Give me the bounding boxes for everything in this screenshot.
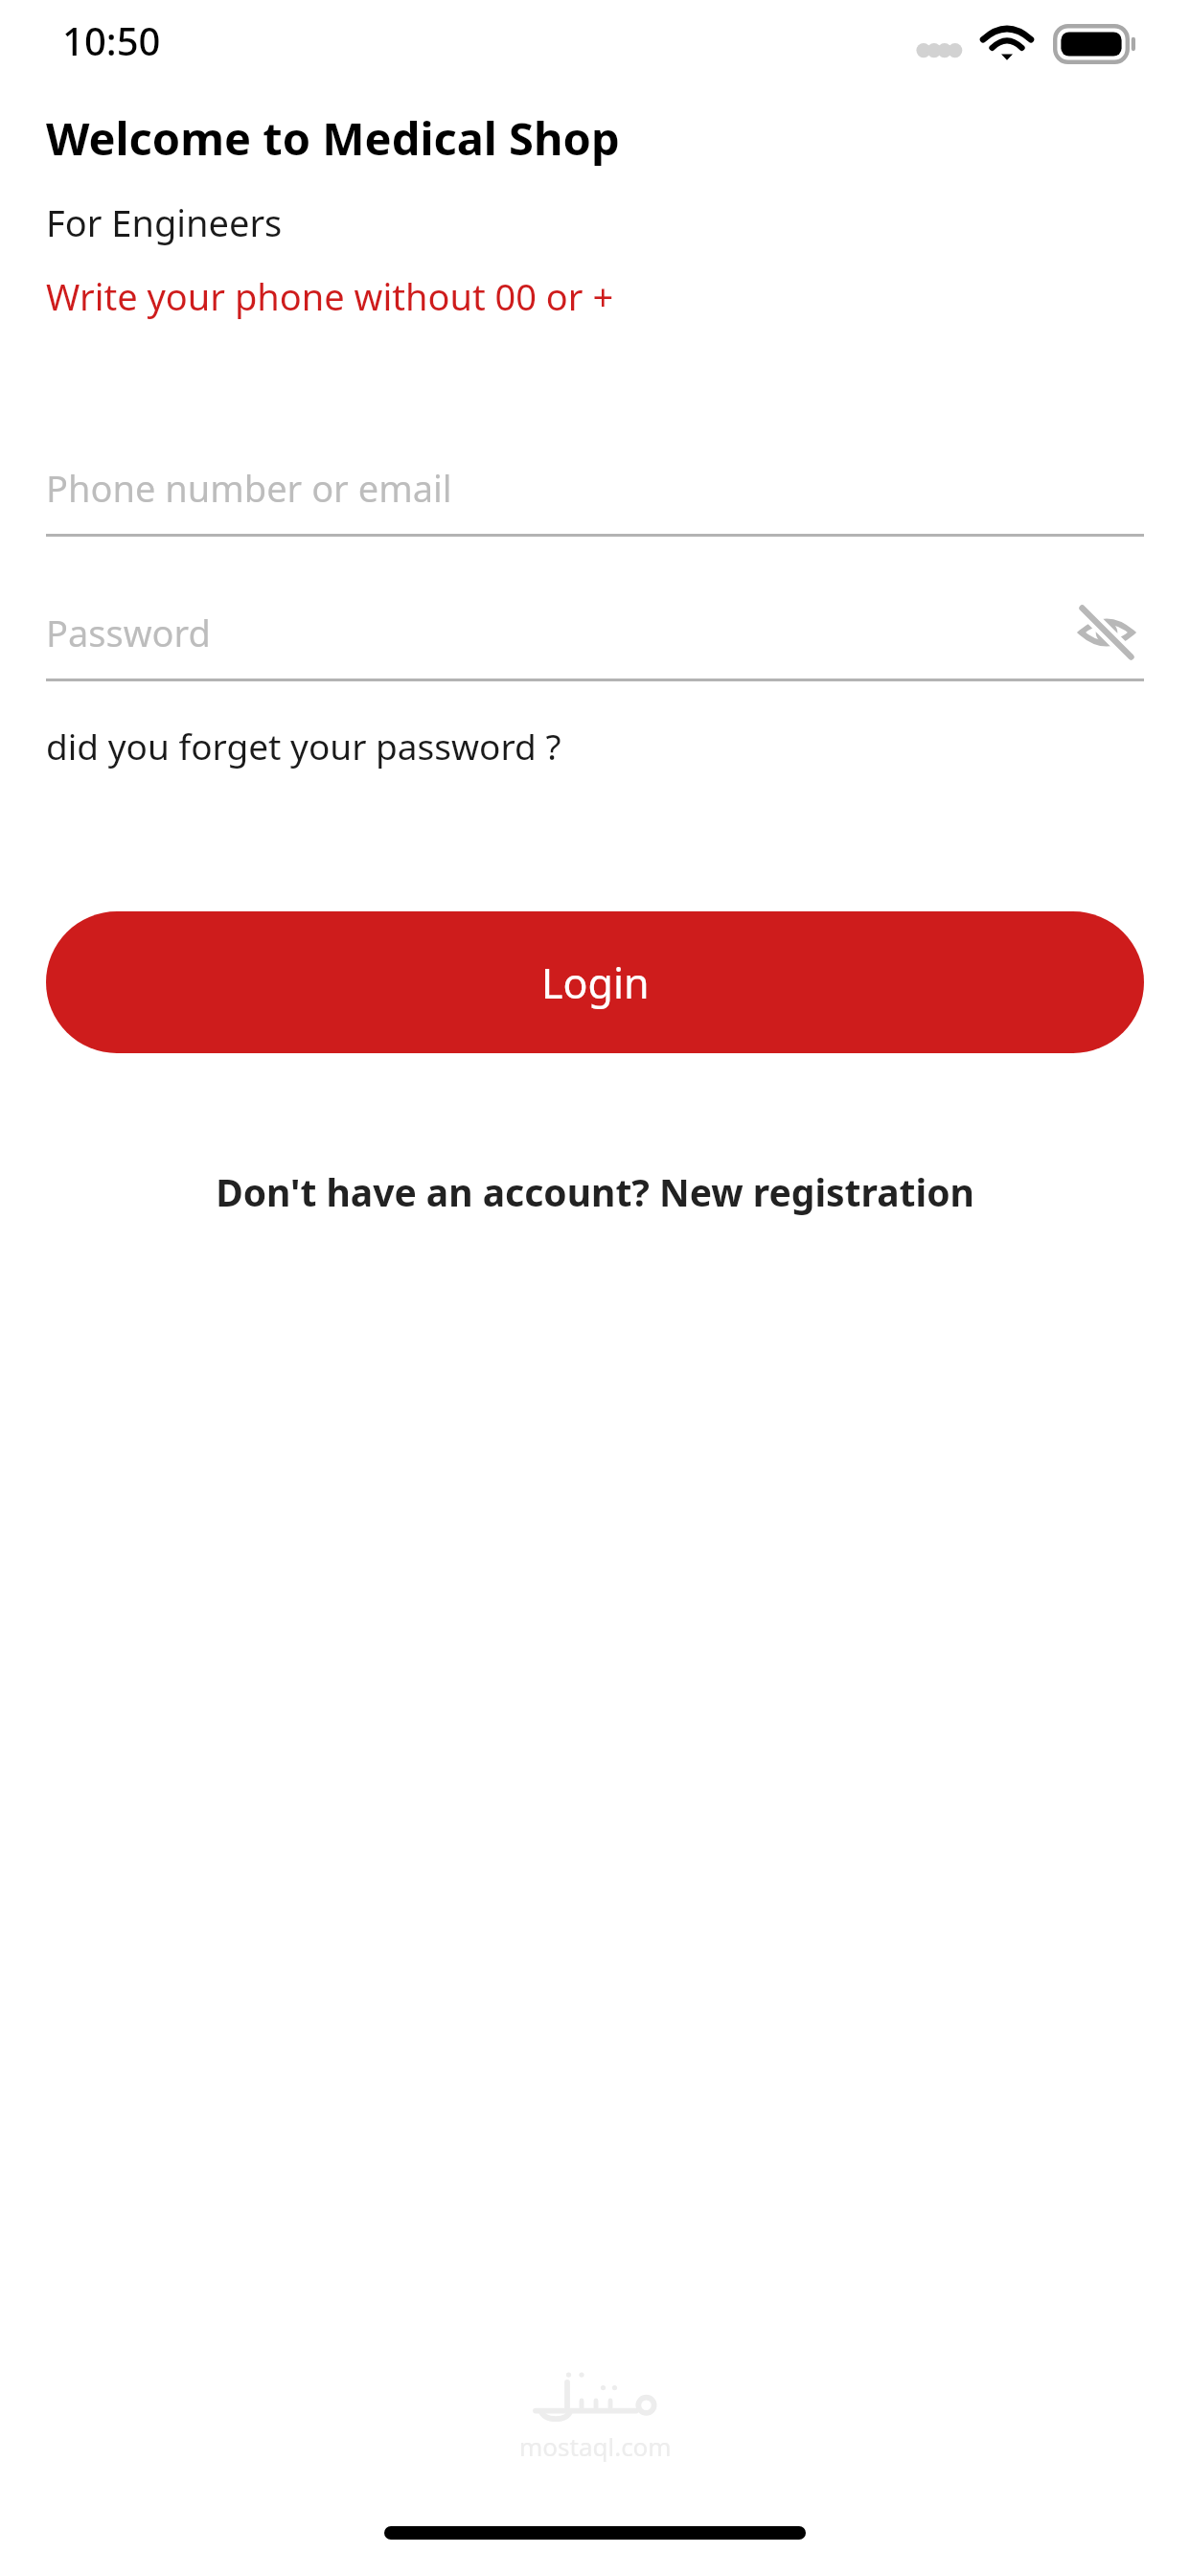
button[interactable]: Don't have an account? New registration bbox=[46, 1166, 1144, 1217]
staticText: Phone number or email bbox=[46, 463, 452, 513]
button[interactable]: did you forget your password ? bbox=[46, 722, 561, 770]
button[interactable]: Phone number or email bbox=[46, 442, 1144, 534]
staticText: did you forget your password ? bbox=[46, 722, 561, 770]
button[interactable]: Login bbox=[46, 911, 1144, 1053]
staticText: For Engineers bbox=[46, 197, 283, 247]
staticText: mostaql.com bbox=[519, 2429, 672, 2463]
staticText: Password bbox=[46, 608, 211, 657]
staticText: Don't have an account? New registration bbox=[216, 1166, 974, 1217]
staticText: 10:50 bbox=[62, 14, 161, 66]
button[interactable]: Password bbox=[46, 586, 1144, 678]
staticText: Login bbox=[541, 954, 650, 1011]
staticText: Welcome to Medical Shop bbox=[46, 107, 620, 169]
staticText: Write your phone without 00 or + bbox=[46, 271, 614, 321]
button[interactable]: Show password bbox=[1069, 595, 1144, 670]
